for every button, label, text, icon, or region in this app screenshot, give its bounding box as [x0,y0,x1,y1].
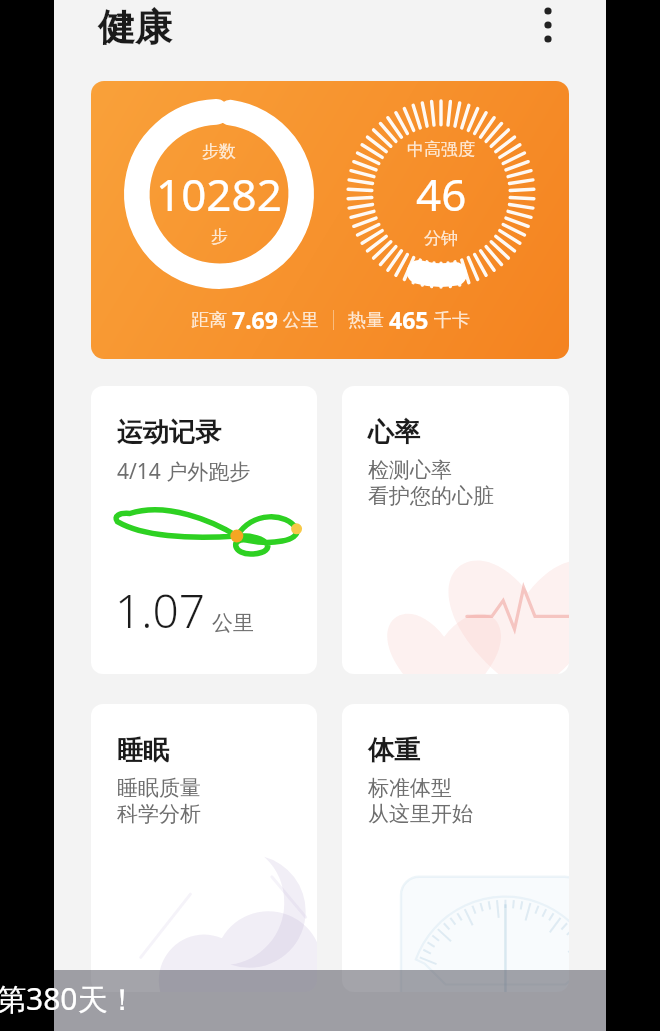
staticText: 465 [389,304,429,335]
staticText: 分钟 [424,228,458,249]
staticText: 看护您的心脏 [368,483,494,509]
staticText: 体重 [368,734,420,767]
button[interactable]: 体重 [342,704,569,992]
staticText: 中高强度 [407,139,475,160]
staticText: 健康 [98,4,172,51]
button[interactable]: 运动记录 [91,386,317,674]
staticText: 心率 [368,416,420,449]
button[interactable]: 步数 [91,81,569,359]
staticText: 46 [416,164,467,224]
button[interactable]: 睡眠 [91,704,317,992]
staticText: 第380天！ [0,978,138,1019]
staticText: 睡眠质量 [117,775,201,801]
staticText: 距离 [191,307,232,332]
staticText: 标准体型 [368,775,452,801]
staticText: 步数 [202,141,236,162]
staticText: 7.69 [232,304,278,335]
staticText: 从这里开始 [368,801,473,827]
button[interactable]: 心率 [342,386,569,674]
staticText: 科学分析 [117,801,201,827]
staticText: 1.07 [115,579,206,642]
staticText: 运动记录 [117,416,221,449]
staticText: 公里 [278,307,319,332]
staticText: 睡眠 [117,734,169,767]
staticText: 千卡 [429,307,470,332]
staticText: 步 [211,226,228,247]
staticText: 公里 [212,610,254,636]
staticText: 检测心率 [368,457,452,483]
staticText: 10282 [156,164,282,224]
staticText: 4/14 户外跑步 [117,457,251,486]
staticText: 热量 [348,307,389,332]
button[interactable]: More options [526,3,570,47]
